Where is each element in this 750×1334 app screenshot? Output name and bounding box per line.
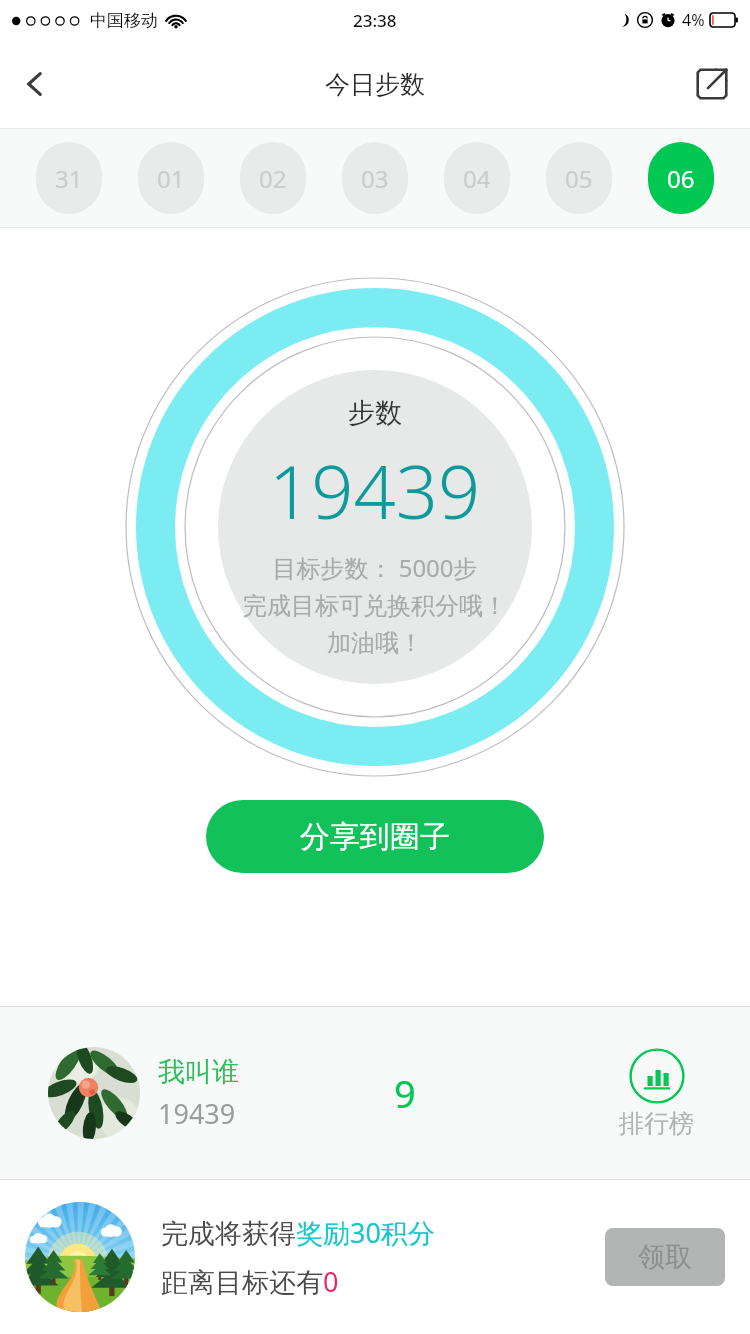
button[interactable]: 04 (444, 142, 510, 214)
staticText: 步数 (348, 396, 402, 430)
staticText: 完成将获得奖励30积分 (161, 1214, 435, 1251)
staticText: 04 (463, 162, 491, 195)
staticText: 排行榜 (619, 1108, 694, 1139)
staticText: 9 (394, 1067, 416, 1119)
staticText: 05 (565, 162, 593, 195)
staticText: 领取 (638, 1240, 692, 1274)
button[interactable]: 06 (648, 142, 714, 214)
button[interactable]: 05 (546, 142, 612, 214)
staticText: 我叫谁 (158, 1055, 239, 1089)
button[interactable]: 03 (342, 142, 408, 214)
staticText: 31 (55, 162, 83, 195)
button[interactable]: 31 (36, 142, 102, 214)
staticText: 距离目标还有0 (161, 1263, 339, 1300)
staticText: 23:38 (353, 9, 397, 32)
staticText: 03 (361, 162, 389, 195)
button[interactable]: 排行榜 (609, 1042, 704, 1145)
staticText: 06 (667, 162, 695, 195)
staticText: 完成目标可兑换积分哦！ (243, 591, 507, 621)
staticText: 02 (259, 162, 287, 195)
button[interactable]: 领取 (605, 1228, 725, 1286)
button[interactable]: 分享到圈子 (206, 800, 544, 873)
staticText: 加油哦！ (327, 628, 423, 658)
staticText: 中国移动 (90, 10, 158, 31)
staticText: 01 (157, 162, 185, 195)
button[interactable]: 01 (138, 142, 204, 214)
button[interactable]: Share (674, 46, 750, 122)
button[interactable]: 02 (240, 142, 306, 214)
button[interactable]: Back (0, 49, 70, 119)
staticText: 目标步数： 5000步 (272, 551, 478, 584)
staticText: 19439 (158, 1095, 236, 1132)
staticText: 19439 (269, 440, 481, 541)
staticText: 4% (682, 9, 705, 31)
staticText: 分享到圈子 (300, 818, 450, 856)
staticText: 今日步数 (325, 69, 425, 100)
button[interactable]: 我叫谁 (0, 1007, 750, 1179)
